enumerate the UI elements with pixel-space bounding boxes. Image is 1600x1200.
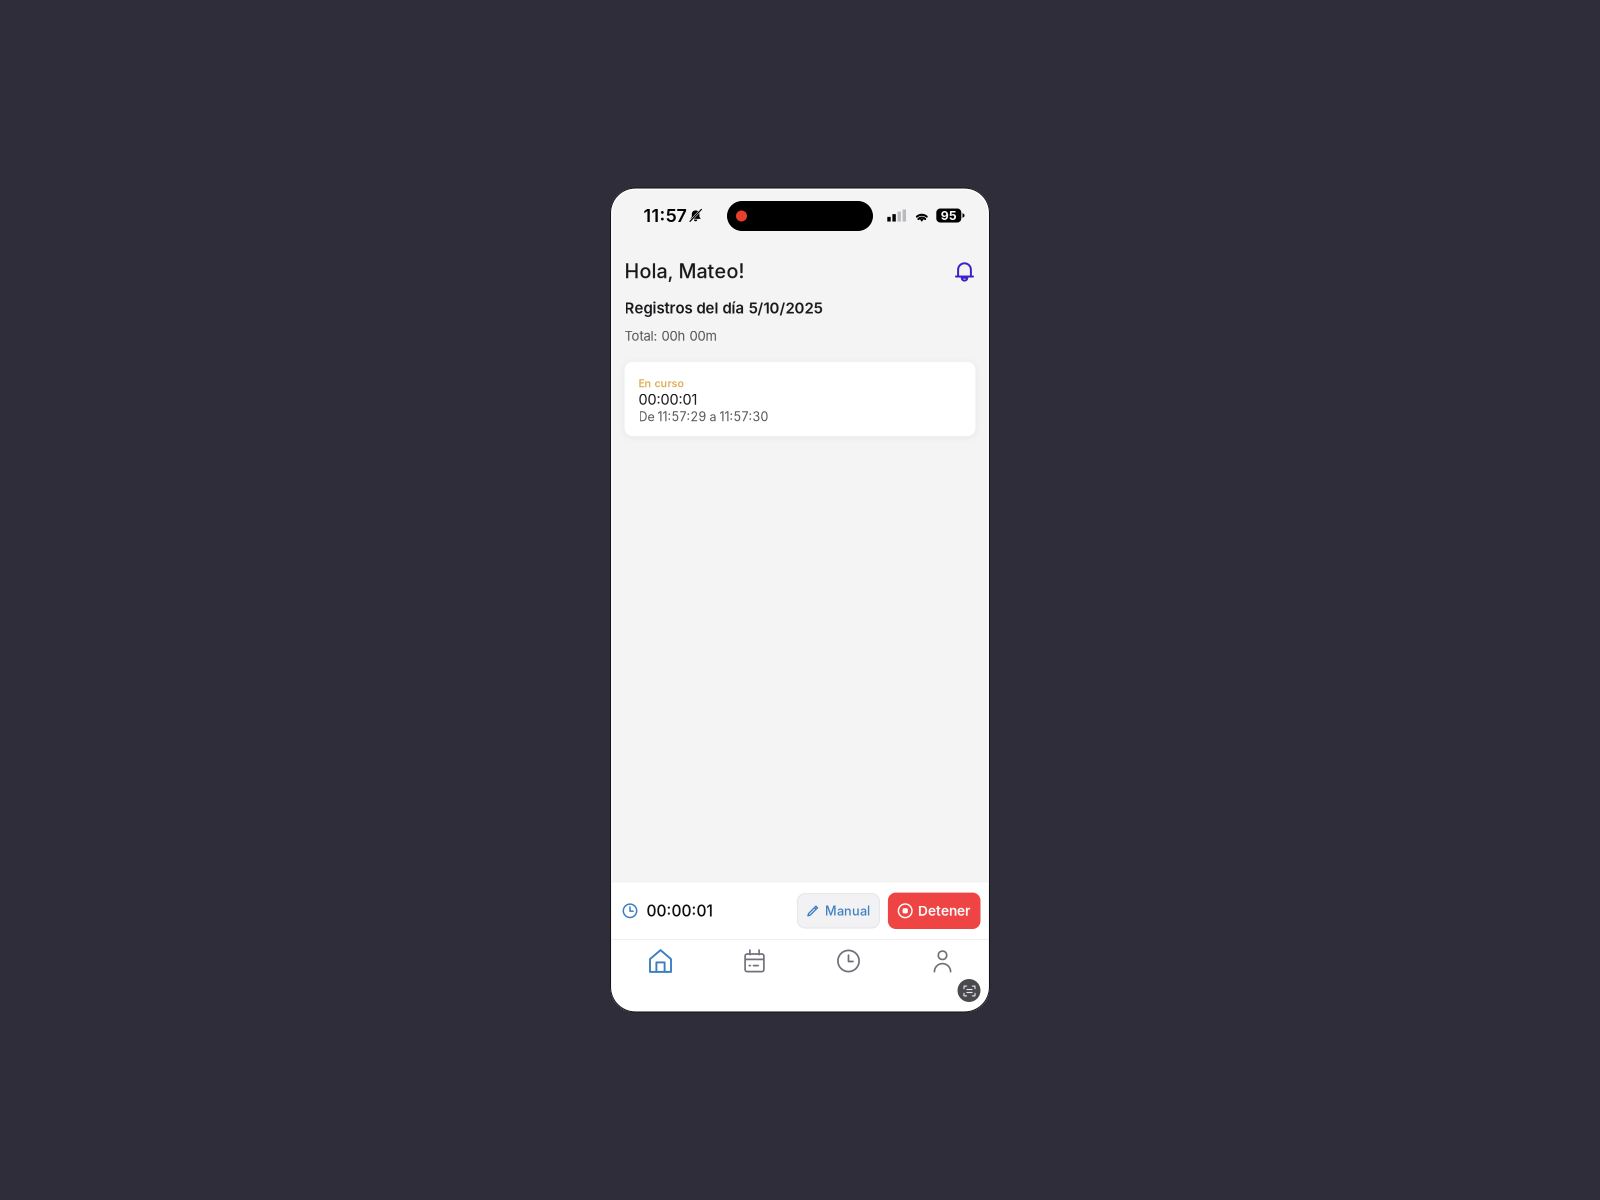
button[interactable]: Escanear (957, 979, 980, 1002)
staticText: Detener (918, 903, 970, 919)
staticText: Manual (825, 903, 870, 918)
staticText: De 11:57:29 a 11:57:30 (638, 409, 768, 424)
staticText: 00:00:01 (638, 391, 697, 408)
staticText: En curso (638, 377, 683, 390)
button[interactable]: Perfil (895, 949, 989, 972)
staticText: Total: 00h 00m (624, 328, 716, 344)
button[interactable]: Calendario (707, 949, 801, 973)
staticText: 11:57 (643, 205, 686, 226)
staticText: 95 (941, 208, 957, 223)
button[interactable]: Notificaciones (949, 258, 975, 284)
staticText: Hola, Mateo! (624, 259, 744, 283)
button[interactable]: Historial (801, 949, 895, 972)
staticText: Registros del día 5/10/2025 (624, 299, 822, 317)
staticText: 00:00:01 (646, 901, 712, 920)
button[interactable]: Inicio (613, 949, 707, 973)
button[interactable]: Detener (888, 893, 980, 929)
button[interactable]: En curso (624, 362, 975, 436)
button[interactable]: Manual (797, 893, 880, 928)
